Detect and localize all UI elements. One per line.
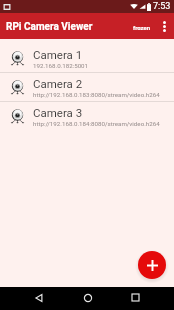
button[interactable]: Camera 1 xyxy=(0,44,174,72)
staticText: Camera 1 xyxy=(33,48,83,61)
button[interactable]: Home xyxy=(77,287,98,308)
staticText: Camera 3 xyxy=(33,106,83,119)
button[interactable]: frozen xyxy=(130,20,154,35)
button[interactable]: Recents xyxy=(125,287,146,308)
button[interactable]: Back xyxy=(28,287,49,308)
staticText: frozen xyxy=(133,24,151,31)
button[interactable]: Camera 3 xyxy=(0,102,174,130)
staticText: 7:53 xyxy=(153,1,171,12)
staticText: http://192.168.0.183:8080/stream/video.h… xyxy=(33,91,160,98)
button[interactable]: Add camera xyxy=(138,251,166,279)
staticText: Camera 2 xyxy=(33,77,83,90)
button[interactable]: More options xyxy=(154,16,174,36)
staticText: RPi Camera Viewer xyxy=(6,21,93,33)
staticText: 192.168.0.182:5001 xyxy=(33,62,89,69)
button[interactable]: Camera 2 xyxy=(0,73,174,101)
staticText: http://192.168.0.184:8080/stream/video.h… xyxy=(33,120,160,127)
